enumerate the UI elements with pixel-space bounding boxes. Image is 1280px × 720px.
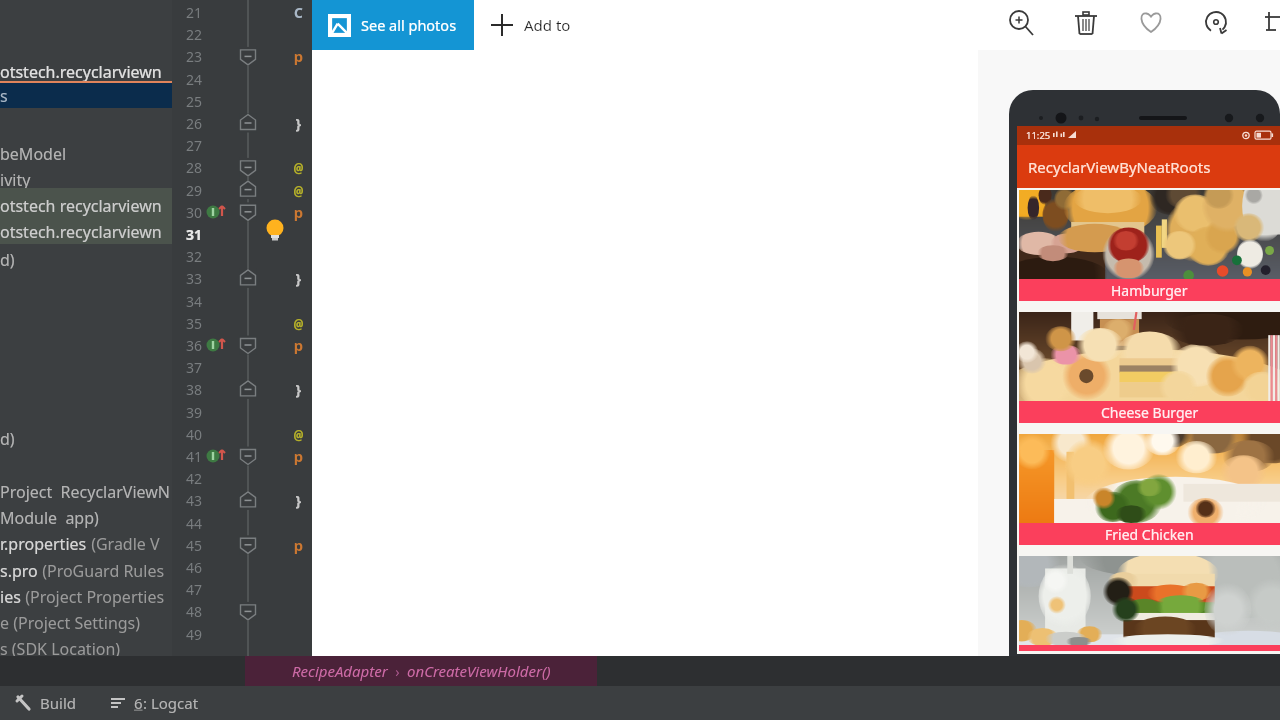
staticText: 33: [178, 269, 202, 288]
staticText: 47: [178, 580, 202, 599]
button[interactable]: [1019, 556, 1280, 651]
staticText: RecipeAdapter: [292, 661, 388, 681]
staticText: p: [294, 335, 304, 355]
staticText: beModel: [0, 143, 67, 165]
button[interactable]: otstech.recyclarviewn: [0, 61, 173, 83]
staticText: 45: [178, 536, 202, 555]
staticText: 48: [178, 602, 202, 621]
staticText: 29: [178, 181, 202, 200]
staticText: See all photos: [361, 15, 457, 35]
staticText: Build: [40, 693, 76, 713]
button[interactable]: Add to: [486, 4, 575, 46]
button[interactable]: ivity: [0, 169, 173, 191]
staticText: 42: [178, 469, 202, 488]
staticText: d): [0, 249, 15, 271]
staticText: Module app): [0, 507, 99, 529]
button[interactable]: 6: [106, 693, 203, 713]
button[interactable]: Delete: [1069, 6, 1105, 42]
button[interactable]: s (SDK Location): [0, 638, 173, 660]
staticText: Add to: [524, 15, 571, 35]
button[interactable]: s: [0, 83, 173, 108]
staticText: 11:25: [1026, 129, 1051, 142]
button[interactable]: d): [0, 249, 173, 271]
staticText: p: [294, 202, 304, 222]
button[interactable]: s.pro: [0, 560, 173, 582]
staticText: 38: [178, 380, 202, 399]
staticText: 44: [178, 514, 202, 533]
button[interactable]: Favorite: [1134, 6, 1170, 42]
button[interactable]: Cheese Burger: [1019, 312, 1280, 423]
staticText: 36: [178, 336, 202, 355]
staticText: 49: [178, 625, 202, 644]
staticText: s (SDK Location): [0, 638, 121, 660]
staticText: 41: [178, 447, 202, 466]
staticText: r.properties: [0, 533, 87, 555]
button[interactable]: Crop: [1264, 6, 1280, 42]
staticText: 31: [178, 225, 202, 244]
staticText: C: [294, 2, 304, 22]
staticText: e (Project Settings): [0, 612, 141, 634]
staticText: 46: [178, 558, 202, 577]
staticText: }: [294, 490, 304, 510]
staticText: d): [0, 428, 15, 450]
staticText: s: [0, 85, 8, 107]
staticText: 34: [178, 292, 202, 311]
staticText: Fried Chicken: [1105, 525, 1194, 544]
staticText: (Project Properties: [21, 586, 165, 608]
staticText: 43: [178, 491, 202, 510]
staticText: Cheese Burger: [1101, 403, 1199, 422]
button[interactable]: Build: [12, 693, 80, 713]
staticText: 22: [178, 25, 202, 44]
staticText: @: [294, 157, 304, 177]
staticText: Hamburger: [1111, 281, 1188, 300]
button[interactable]: ies: [0, 586, 173, 608]
staticText: ›: [388, 662, 407, 681]
staticText: 30: [178, 203, 202, 222]
staticText: 28: [178, 158, 202, 177]
button[interactable]: otstech recyclarviewn: [0, 195, 173, 217]
button[interactable]: otstech.recyclarviewn: [0, 221, 173, 243]
staticText: @: [294, 180, 304, 200]
staticText: 37: [178, 358, 202, 377]
staticText: }: [294, 379, 304, 399]
staticText: 26: [178, 114, 202, 133]
staticText: RecyclarViewByNeatRoots: [1028, 157, 1211, 177]
staticText: 6: [134, 693, 143, 713]
staticText: otstech.recyclarviewn: [0, 61, 162, 83]
staticText: otstech.recyclarviewn: [0, 221, 162, 243]
button[interactable]: Module app): [0, 507, 173, 529]
button[interactable]: e (Project Settings): [0, 612, 173, 634]
staticText: 25: [178, 92, 202, 111]
staticText: 32: [178, 247, 202, 266]
staticText: 21: [178, 3, 202, 22]
staticText: p: [294, 46, 304, 66]
staticText: p: [294, 535, 304, 555]
staticText: Project RecyclarViewN: [0, 481, 170, 503]
staticText: 23: [178, 47, 202, 66]
staticText: 24: [178, 70, 202, 89]
staticText: s.pro: [0, 560, 38, 582]
button[interactable]: beModel: [0, 143, 173, 165]
button[interactable]: Fried Chicken: [1019, 434, 1280, 545]
button[interactable]: Project RecyclarViewN: [0, 481, 173, 503]
staticText: (Gradle V: [87, 533, 160, 555]
staticText: ivity: [0, 169, 31, 191]
button[interactable]: See all photos: [312, 0, 474, 50]
button[interactable]: Rotate: [1199, 6, 1235, 42]
button[interactable]: Hamburger: [1019, 190, 1280, 301]
staticText: @: [294, 424, 304, 444]
staticText: }: [294, 113, 304, 133]
button[interactable]: r.properties: [0, 533, 173, 555]
staticText: onCreateViewHolder(): [407, 661, 551, 681]
staticText: : Logcat: [143, 693, 199, 713]
staticText: 27: [178, 136, 202, 155]
button[interactable]: d): [0, 428, 173, 450]
staticText: }: [294, 268, 304, 288]
staticText: otstech recyclarviewn: [0, 195, 162, 217]
staticText: 35: [178, 314, 202, 333]
staticText: ies: [0, 586, 21, 608]
button[interactable]: Zoom: [1004, 6, 1040, 42]
staticText: p: [294, 446, 304, 466]
staticText: @: [294, 313, 304, 333]
staticText: (ProGuard Rules: [38, 560, 165, 582]
